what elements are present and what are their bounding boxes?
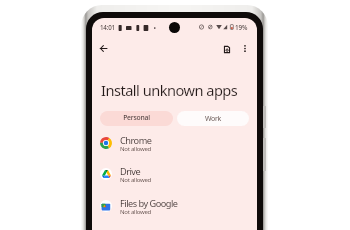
button[interactable]: Chrome: [92, 127, 257, 159]
button[interactable]: More options: [238, 41, 252, 55]
staticText: 19%: [235, 23, 248, 32]
button[interactable]: Files by Google: [92, 190, 257, 222]
button[interactable]: Personal: [100, 111, 173, 126]
staticText: Work: [177, 114, 249, 124]
staticText: Not allowed: [120, 145, 152, 153]
staticText: Chrome: [120, 134, 152, 147]
button[interactable]: Work: [177, 111, 249, 126]
staticText: Personal: [100, 113, 173, 122]
staticText: Not allowed: [120, 208, 152, 216]
staticText: 14:01: [100, 23, 115, 31]
button[interactable]: Back: [96, 41, 110, 55]
staticText: Files by Google: [120, 197, 178, 210]
staticText: Install unknown apps: [101, 80, 238, 100]
button[interactable]: Drive: [92, 158, 257, 190]
button[interactable]: Help: [220, 42, 234, 56]
staticText: Drive: [120, 165, 141, 178]
staticText: Not allowed: [120, 176, 152, 184]
